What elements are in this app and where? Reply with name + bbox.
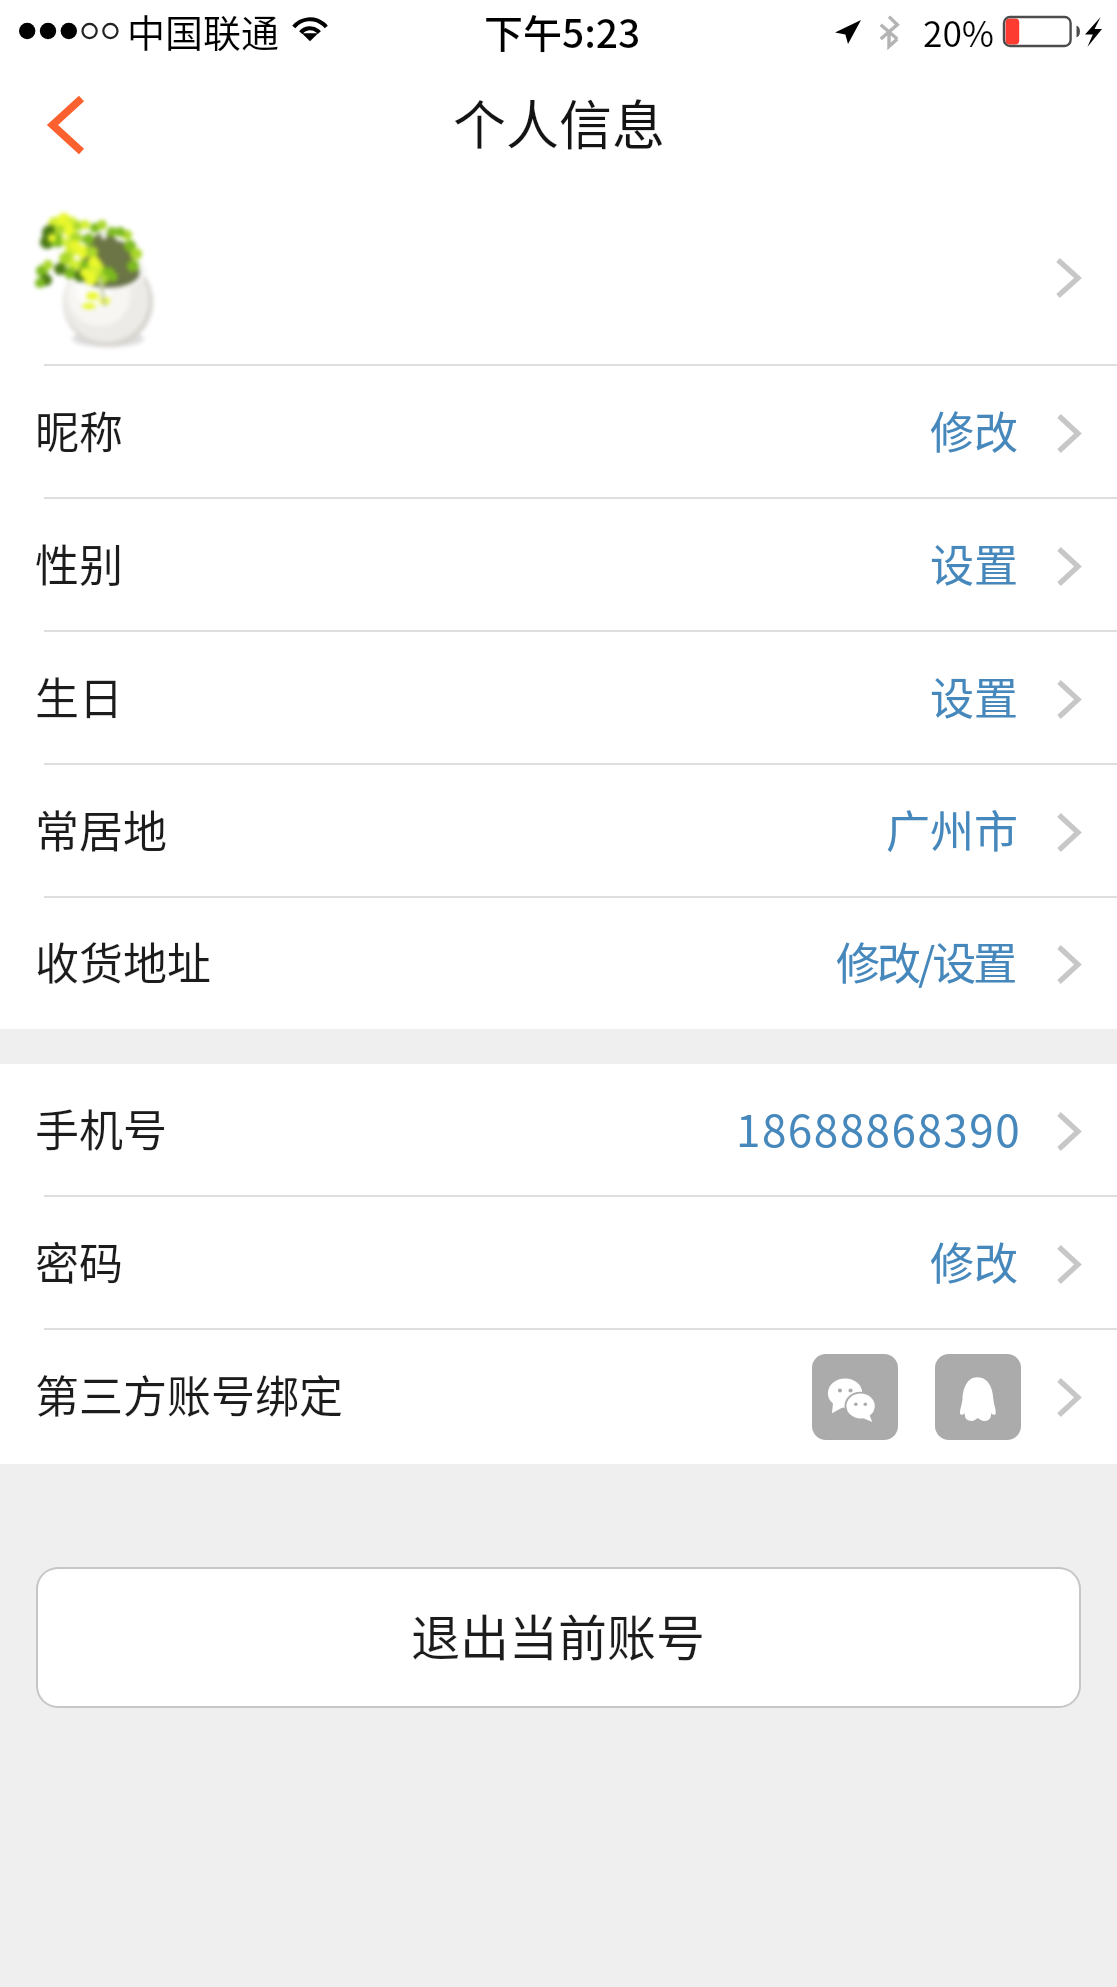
staticText: 退出当前账号: [411, 1599, 706, 1670]
staticText: 修改/设置: [836, 929, 1015, 993]
button[interactable]: 性别: [0, 499, 1117, 632]
staticText: 下午5:23: [484, 3, 641, 59]
staticText: 收货地址: [35, 929, 211, 993]
staticText: 18688868390: [736, 1096, 1022, 1160]
staticText: 昵称: [35, 398, 123, 462]
staticText: 20%: [923, 6, 995, 57]
button[interactable]: WeChat: [812, 1354, 898, 1440]
button[interactable]: Change profile photo: [0, 180, 1117, 366]
staticText: 生日: [35, 664, 123, 728]
button[interactable]: Back: [0, 70, 130, 180]
button[interactable]: 退出当前账号: [36, 1567, 1081, 1708]
button[interactable]: 手机号: [0, 1064, 1117, 1197]
staticText: 个人信息: [453, 84, 665, 161]
staticText: 手机号: [35, 1096, 167, 1160]
staticText: 设置: [930, 531, 1018, 595]
staticText: 广州市: [886, 797, 1018, 861]
button[interactable]: 收货地址: [0, 898, 1117, 1029]
button[interactable]: 昵称: [0, 366, 1117, 499]
staticText: 修改: [930, 1229, 1018, 1293]
staticText: 第三方账号绑定: [35, 1362, 343, 1426]
button[interactable]: QQ: [935, 1354, 1021, 1440]
staticText: 常居地: [35, 797, 167, 861]
button[interactable]: 第三方账号绑定: [0, 1330, 1117, 1464]
button[interactable]: 密码: [0, 1197, 1117, 1330]
staticText: 性别: [35, 531, 123, 595]
staticText: 设置: [930, 664, 1018, 728]
staticText: 中国联通: [127, 3, 280, 58]
button[interactable]: 生日: [0, 632, 1117, 765]
staticText: 修改: [930, 398, 1018, 462]
button[interactable]: 常居地: [0, 765, 1117, 898]
staticText: 密码: [35, 1229, 123, 1293]
